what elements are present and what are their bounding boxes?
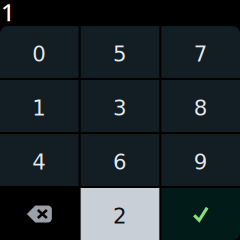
button[interactable]: 9 <box>161 134 240 186</box>
staticText: 7 <box>194 42 208 66</box>
button[interactable]: Delete <box>0 188 79 240</box>
button[interactable]: 0 <box>0 26 79 78</box>
staticText: 6 <box>113 150 127 174</box>
staticText: 4 <box>32 150 46 174</box>
staticText: 5 <box>113 42 127 66</box>
staticText: 3 <box>113 96 127 120</box>
staticText: 0 <box>32 42 46 66</box>
staticText: 2 <box>113 204 127 228</box>
button[interactable]: Confirm <box>161 188 240 240</box>
staticText: 8 <box>194 96 208 120</box>
button[interactable]: 7 <box>161 26 240 78</box>
button[interactable]: 1 <box>0 80 79 132</box>
button[interactable]: 4 <box>0 134 79 186</box>
button[interactable]: 3 <box>81 80 159 132</box>
button[interactable]: 8 <box>161 80 240 132</box>
button[interactable]: 6 <box>81 134 159 186</box>
staticText: 1 <box>32 96 46 120</box>
button[interactable]: 5 <box>81 26 159 78</box>
staticText: 1 <box>1 0 15 28</box>
button[interactable]: 2 <box>81 188 159 240</box>
staticText: 9 <box>194 150 208 174</box>
